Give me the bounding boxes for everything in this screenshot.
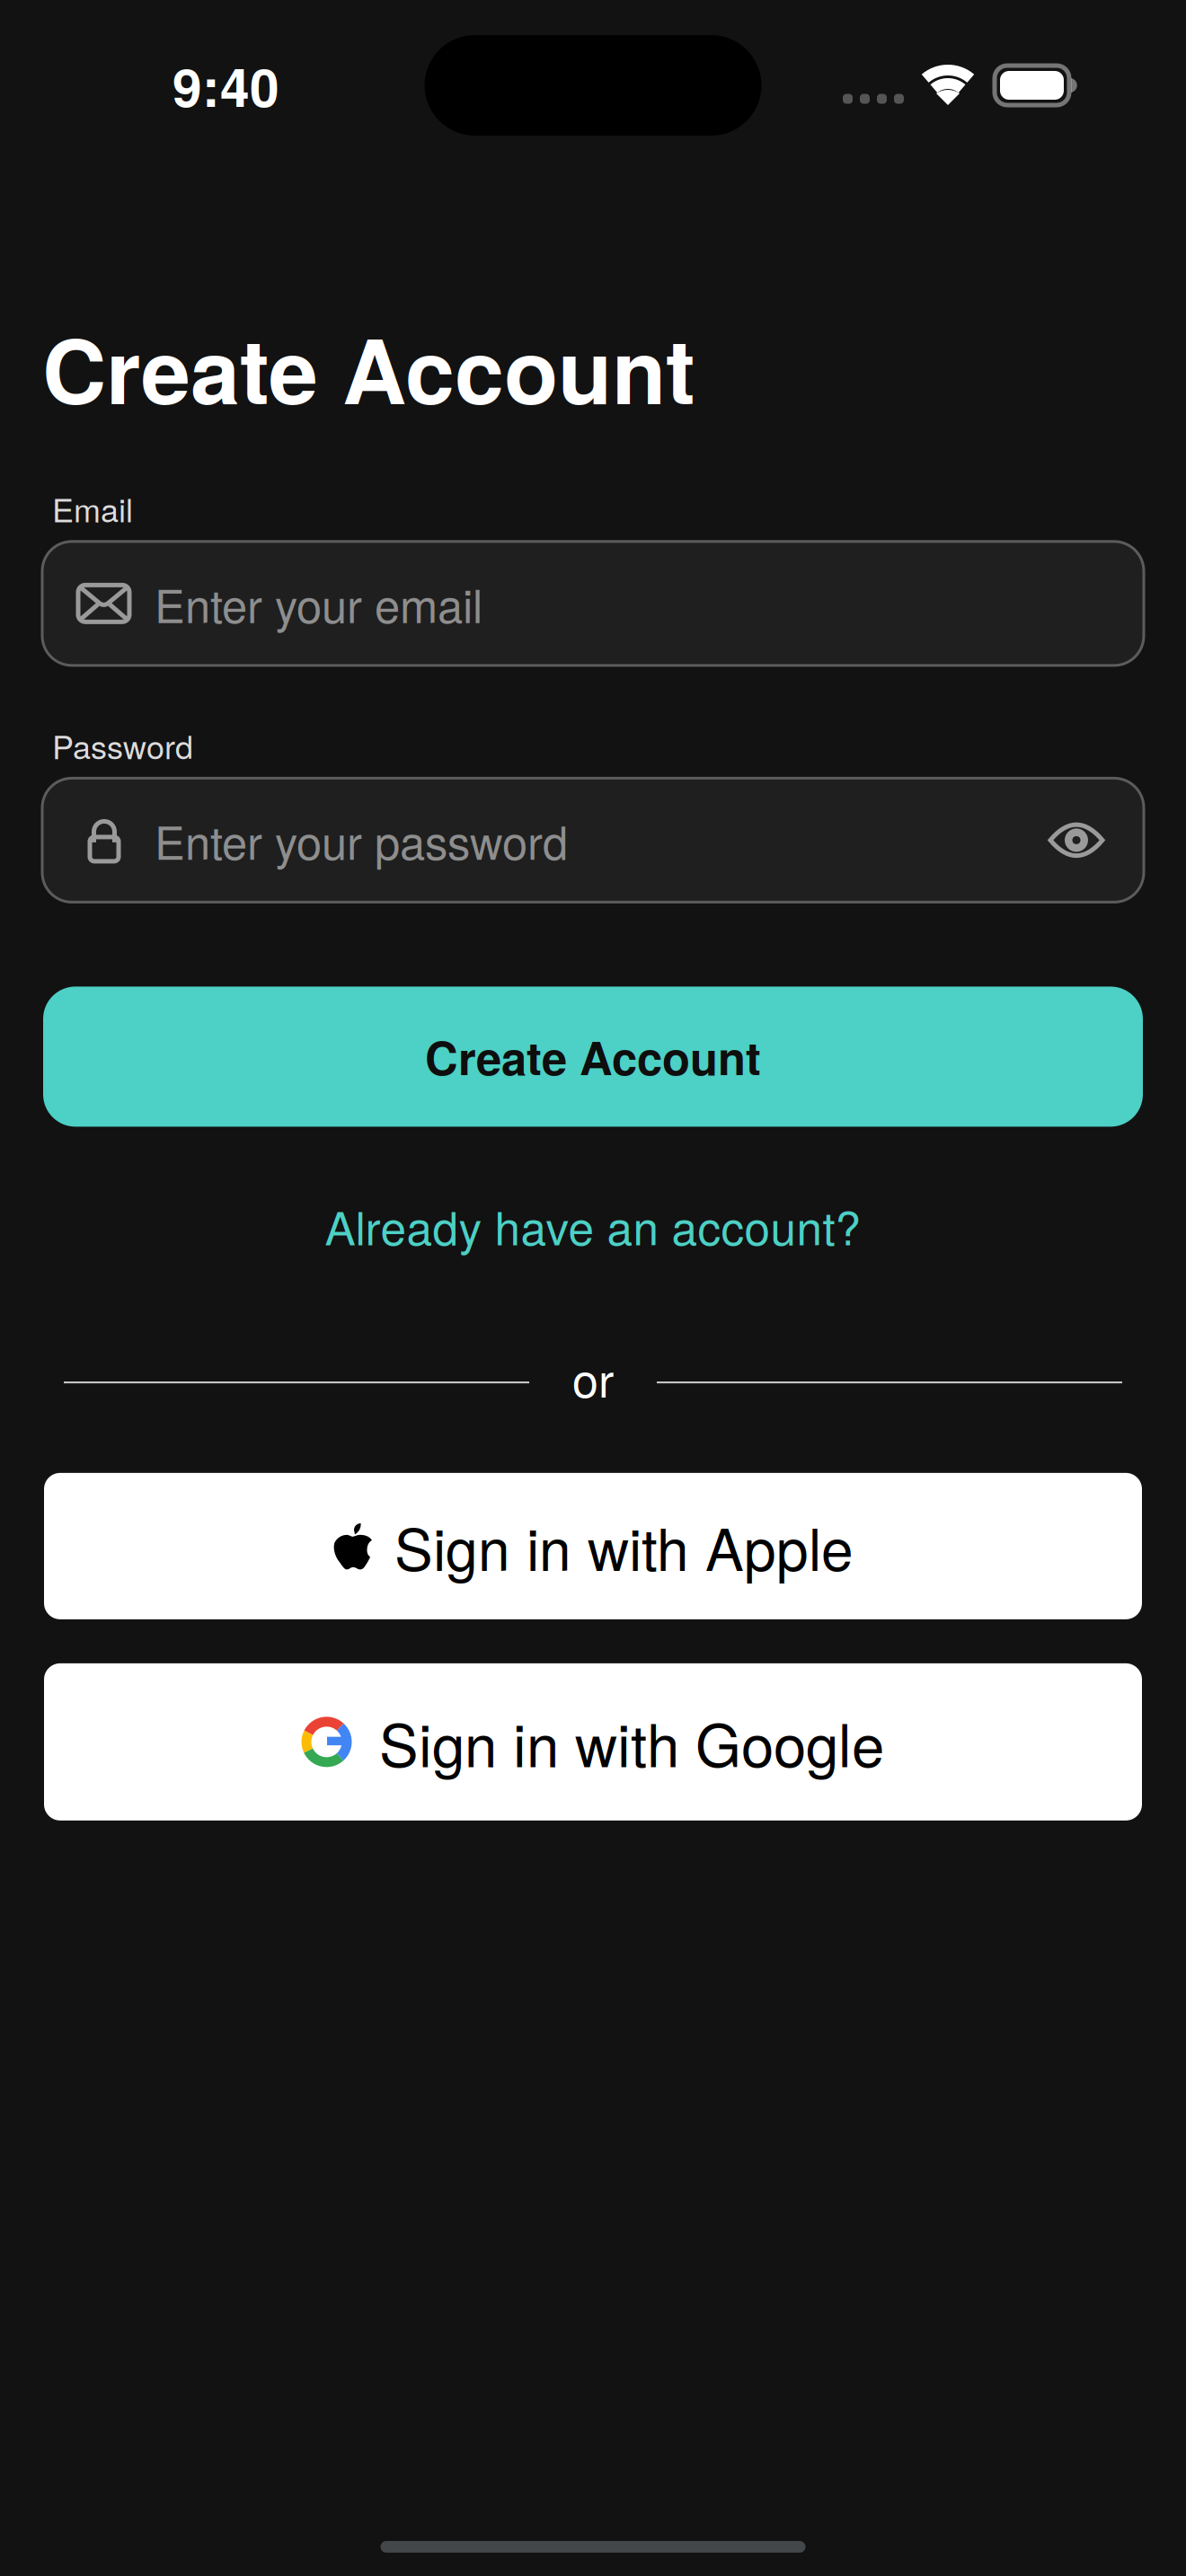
- staticText: Enter your password: [155, 808, 568, 873]
- staticText: Password: [52, 722, 193, 768]
- staticText: 9:40: [173, 48, 279, 123]
- staticText: Email: [52, 485, 133, 532]
- staticText: Create Account: [42, 304, 695, 431]
- button[interactable]: Already have an account?: [0, 1192, 1186, 1259]
- staticText: Enter your email: [155, 571, 482, 636]
- staticText: Create Account: [425, 1024, 761, 1089]
- staticText: Sign in with Google: [379, 1700, 884, 1784]
- button[interactable]: Create Account: [43, 987, 1143, 1127]
- button[interactable]: Sign in with Google: [44, 1663, 1142, 1821]
- staticText: Sign in with Apple: [394, 1505, 854, 1587]
- staticText: or: [572, 1344, 614, 1411]
- staticText: Already have an account?: [325, 1192, 861, 1258]
- button[interactable]: Sign in with Apple: [44, 1473, 1142, 1619]
